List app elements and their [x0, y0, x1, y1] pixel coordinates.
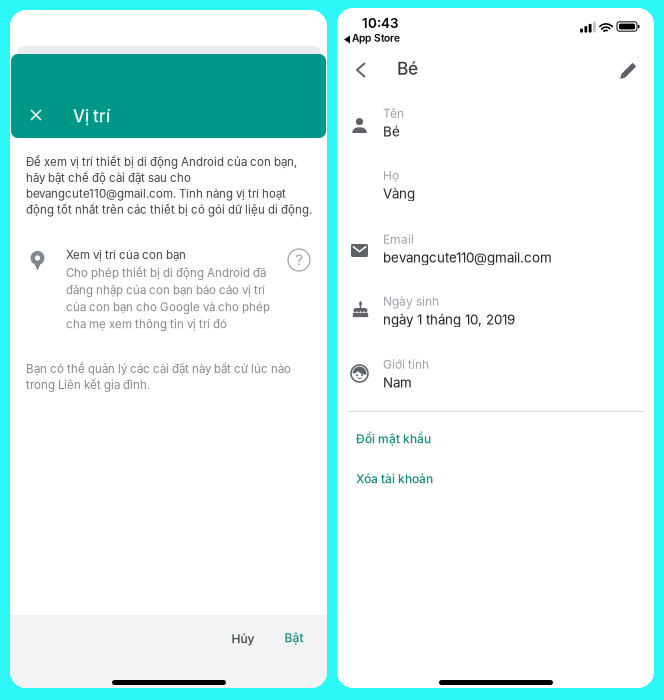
staticText: Bé — [397, 58, 418, 79]
staticText: Giới tính — [383, 357, 429, 371]
staticText: Cho phép thiết bị di động Android đã đăn… — [66, 266, 270, 331]
button[interactable]: Close — [19, 98, 53, 132]
staticText: Để xem vị trí thiết bị di động Android c… — [26, 155, 312, 216]
button[interactable]: Hủy — [220, 626, 266, 652]
button[interactable]: Đổi mật khẩu — [356, 426, 556, 452]
staticText: Vị trí — [73, 106, 110, 126]
staticText: Xóa tài khoản — [356, 472, 433, 486]
staticText: Email — [383, 232, 414, 246]
staticText: bevangcute110@gmail.com — [383, 249, 552, 266]
button[interactable]: Edit — [617, 58, 641, 82]
button[interactable]: Xóa tài khoản — [356, 466, 556, 492]
staticText: Ngày sinh — [383, 294, 439, 308]
staticText: 10:43 — [362, 15, 398, 31]
staticText: ngày 1 tháng 10, 2019 — [383, 311, 515, 328]
staticText: Xem vị trí của con bạn — [66, 248, 186, 262]
staticText: Bạn có thể quản lý các cài đặt này bất c… — [26, 362, 291, 392]
staticText: Đổi mật khẩu — [356, 432, 431, 446]
staticText: Bé — [383, 123, 400, 140]
staticText: App Store — [352, 32, 400, 44]
button[interactable]: Bật — [274, 625, 314, 651]
staticText: Tên — [383, 106, 404, 120]
staticText: Họ — [383, 168, 399, 182]
staticText: ? — [295, 251, 302, 269]
staticText: Vàng — [383, 185, 415, 202]
button[interactable]: Help — [287, 248, 311, 272]
staticText: Bật — [284, 631, 303, 645]
staticText: Hủy — [231, 632, 254, 646]
staticText: Nam — [383, 374, 412, 391]
button[interactable]: Back — [346, 55, 376, 85]
